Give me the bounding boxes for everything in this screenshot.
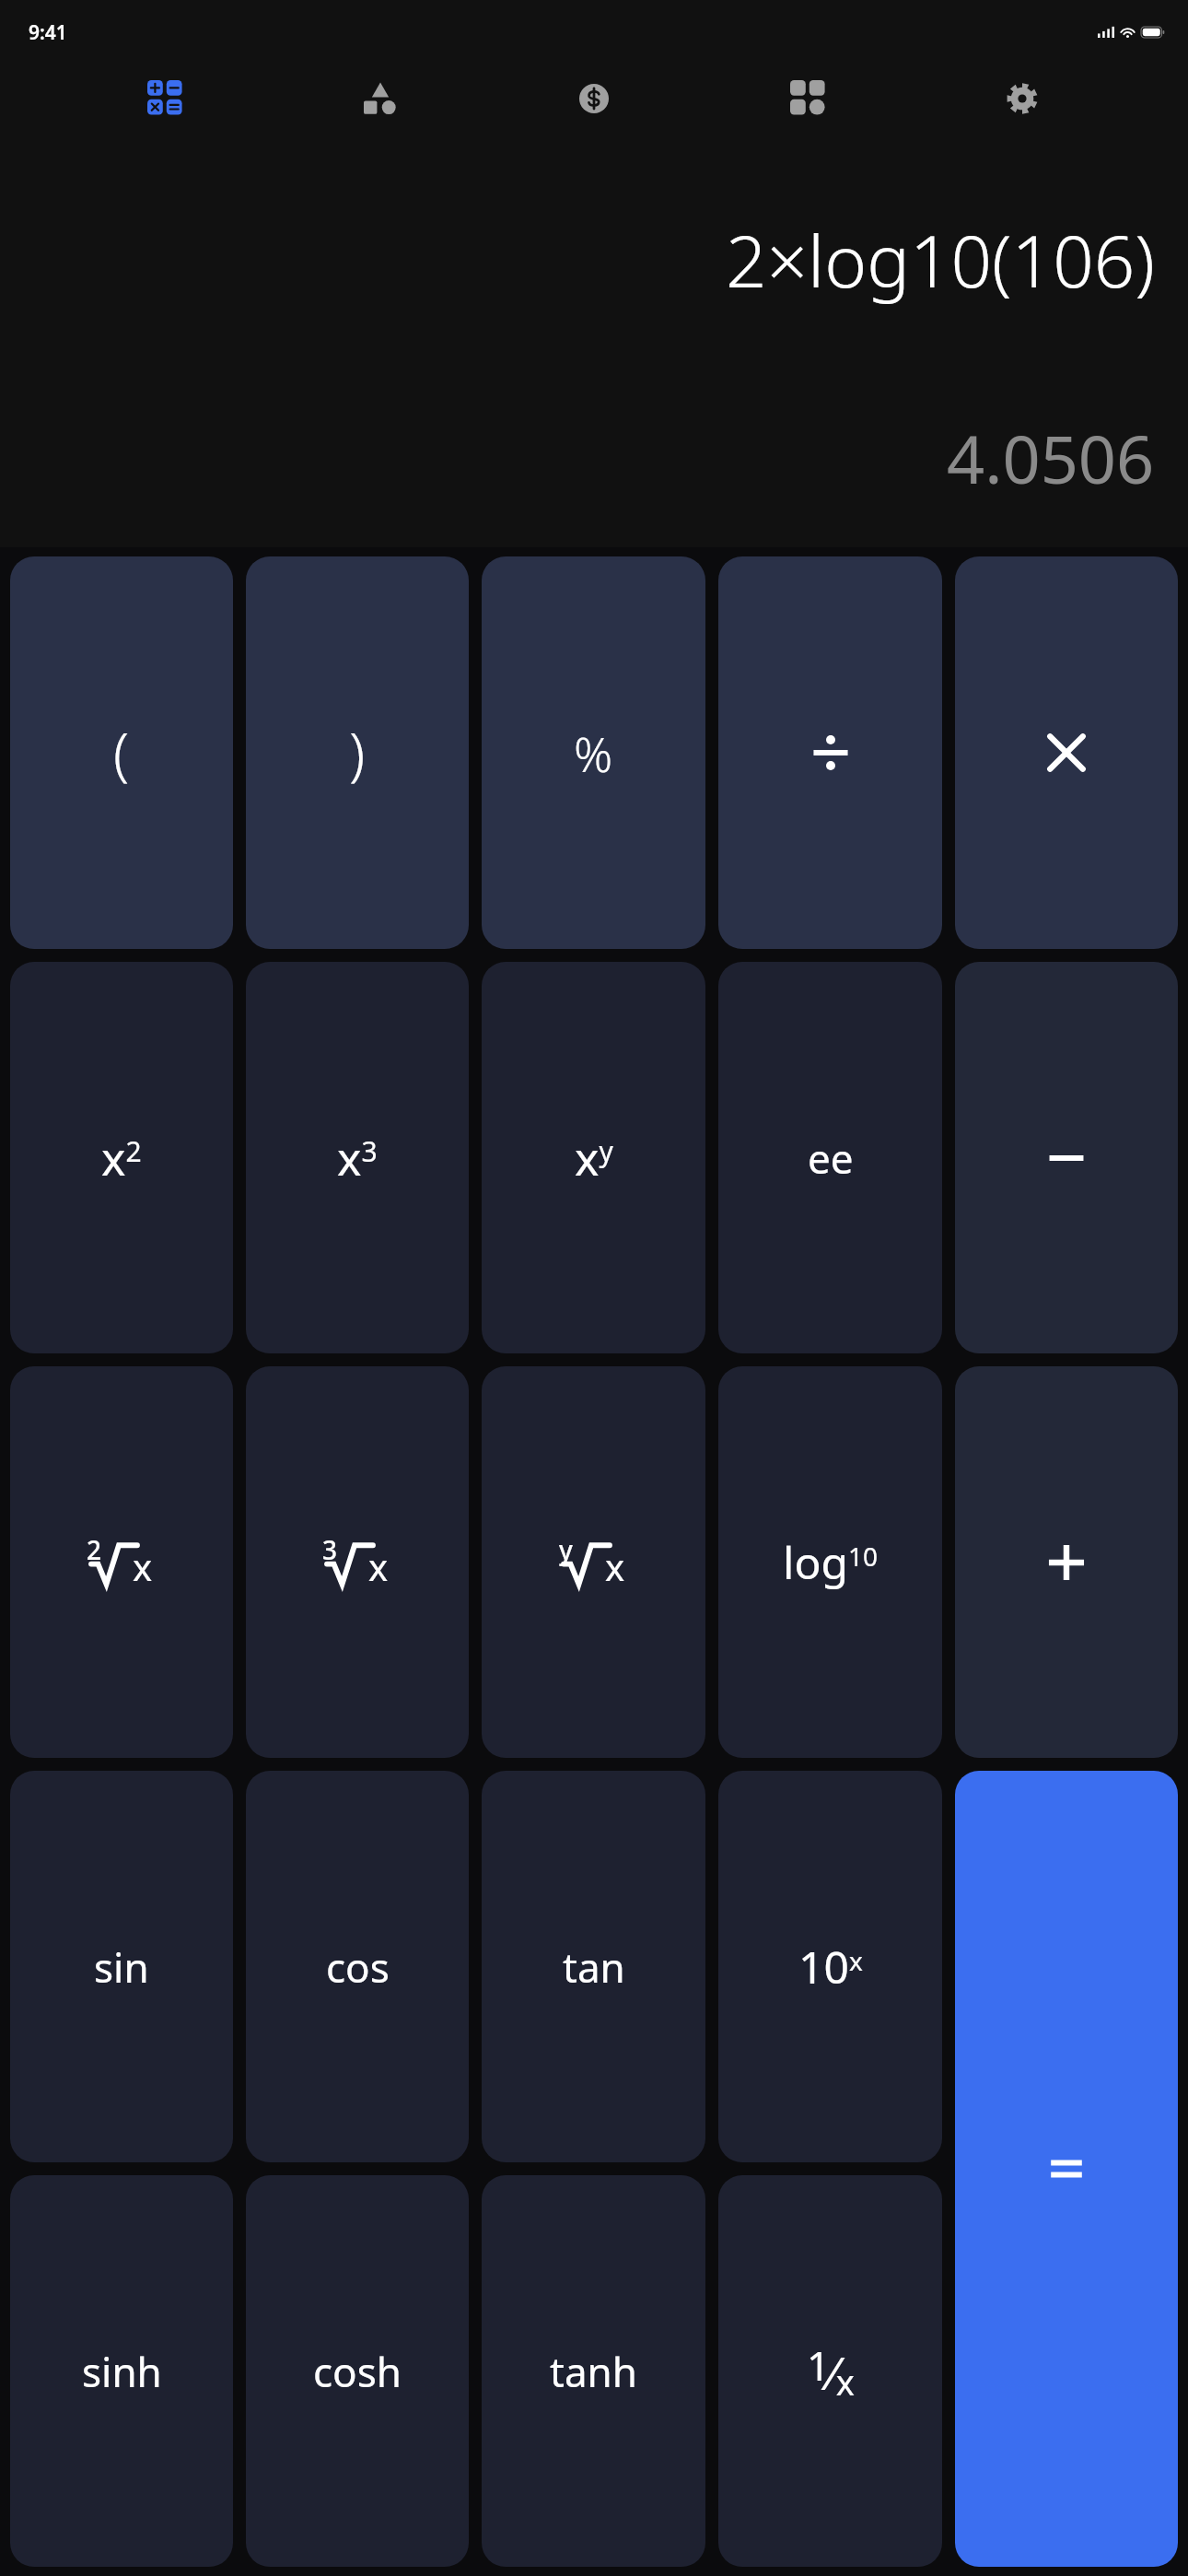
staticText: % <box>574 720 613 786</box>
staticText: log10 <box>783 1532 878 1592</box>
staticText: 2×log10(106) <box>726 211 1155 309</box>
staticText: ) <box>349 714 366 791</box>
staticText: tanh <box>550 2344 637 2399</box>
staticText: sinh <box>82 2344 162 2399</box>
staticText: tan <box>563 1939 625 1995</box>
button[interactable]: + <box>955 1366 1178 1758</box>
button[interactable]: r2 <box>10 1366 233 1758</box>
staticText: x <box>368 1541 389 1591</box>
staticText: x <box>133 1541 153 1591</box>
staticText: y <box>559 1532 573 1567</box>
staticText: x3 <box>337 1127 378 1189</box>
staticText: xy <box>575 1127 613 1189</box>
button[interactable]: ( <box>10 556 233 949</box>
staticText: ( <box>113 714 130 791</box>
staticText: sin <box>94 1939 149 1995</box>
button[interactable]: Unit converter <box>779 69 838 128</box>
button[interactable]: sin <box>10 1771 233 2162</box>
staticText: 2 <box>87 1532 102 1567</box>
staticText: 4.0506 <box>947 413 1155 503</box>
staticText: x <box>605 1541 625 1591</box>
staticText: ee <box>808 1130 854 1186</box>
staticText: cos <box>326 1939 390 1995</box>
button[interactable]: x2 <box>10 962 233 1353</box>
staticText: 3 <box>322 1532 338 1567</box>
button[interactable]: Geometry <box>351 69 410 128</box>
staticText: x2 <box>101 1127 142 1189</box>
button[interactable]: ee <box>718 962 942 1353</box>
button[interactable]: 1/x <box>718 2175 942 2567</box>
button[interactable]: 10x <box>718 1771 942 2162</box>
staticText: 9:41 <box>29 19 67 46</box>
button[interactable]: r3 <box>246 1366 469 1758</box>
button[interactable]: = <box>955 1771 1178 2567</box>
button[interactable]: tan <box>482 1771 705 2162</box>
button[interactable]: cos <box>246 1771 469 2162</box>
button[interactable]: % <box>482 556 705 949</box>
staticText: 10x <box>798 1937 863 1996</box>
button[interactable]: ) <box>246 556 469 949</box>
button[interactable]: log10 <box>718 1366 942 1758</box>
staticText: cosh <box>313 2344 402 2399</box>
staticText: 1⁄x <box>807 2337 855 2406</box>
button[interactable]: Currency <box>565 69 623 128</box>
button[interactable]: tanh <box>482 2175 705 2567</box>
button[interactable]: x3 <box>246 962 469 1353</box>
button[interactable]: ÷ <box>718 556 942 949</box>
button[interactable]: xy <box>482 962 705 1353</box>
button[interactable]: Settings <box>993 69 1052 128</box>
button[interactable]: × <box>955 556 1178 949</box>
button[interactable]: ry <box>482 1366 705 1758</box>
button[interactable]: − <box>955 962 1178 1353</box>
button[interactable]: Basic calculator <box>136 69 195 128</box>
button[interactable]: cosh <box>246 2175 469 2567</box>
button[interactable]: sinh <box>10 2175 233 2567</box>
